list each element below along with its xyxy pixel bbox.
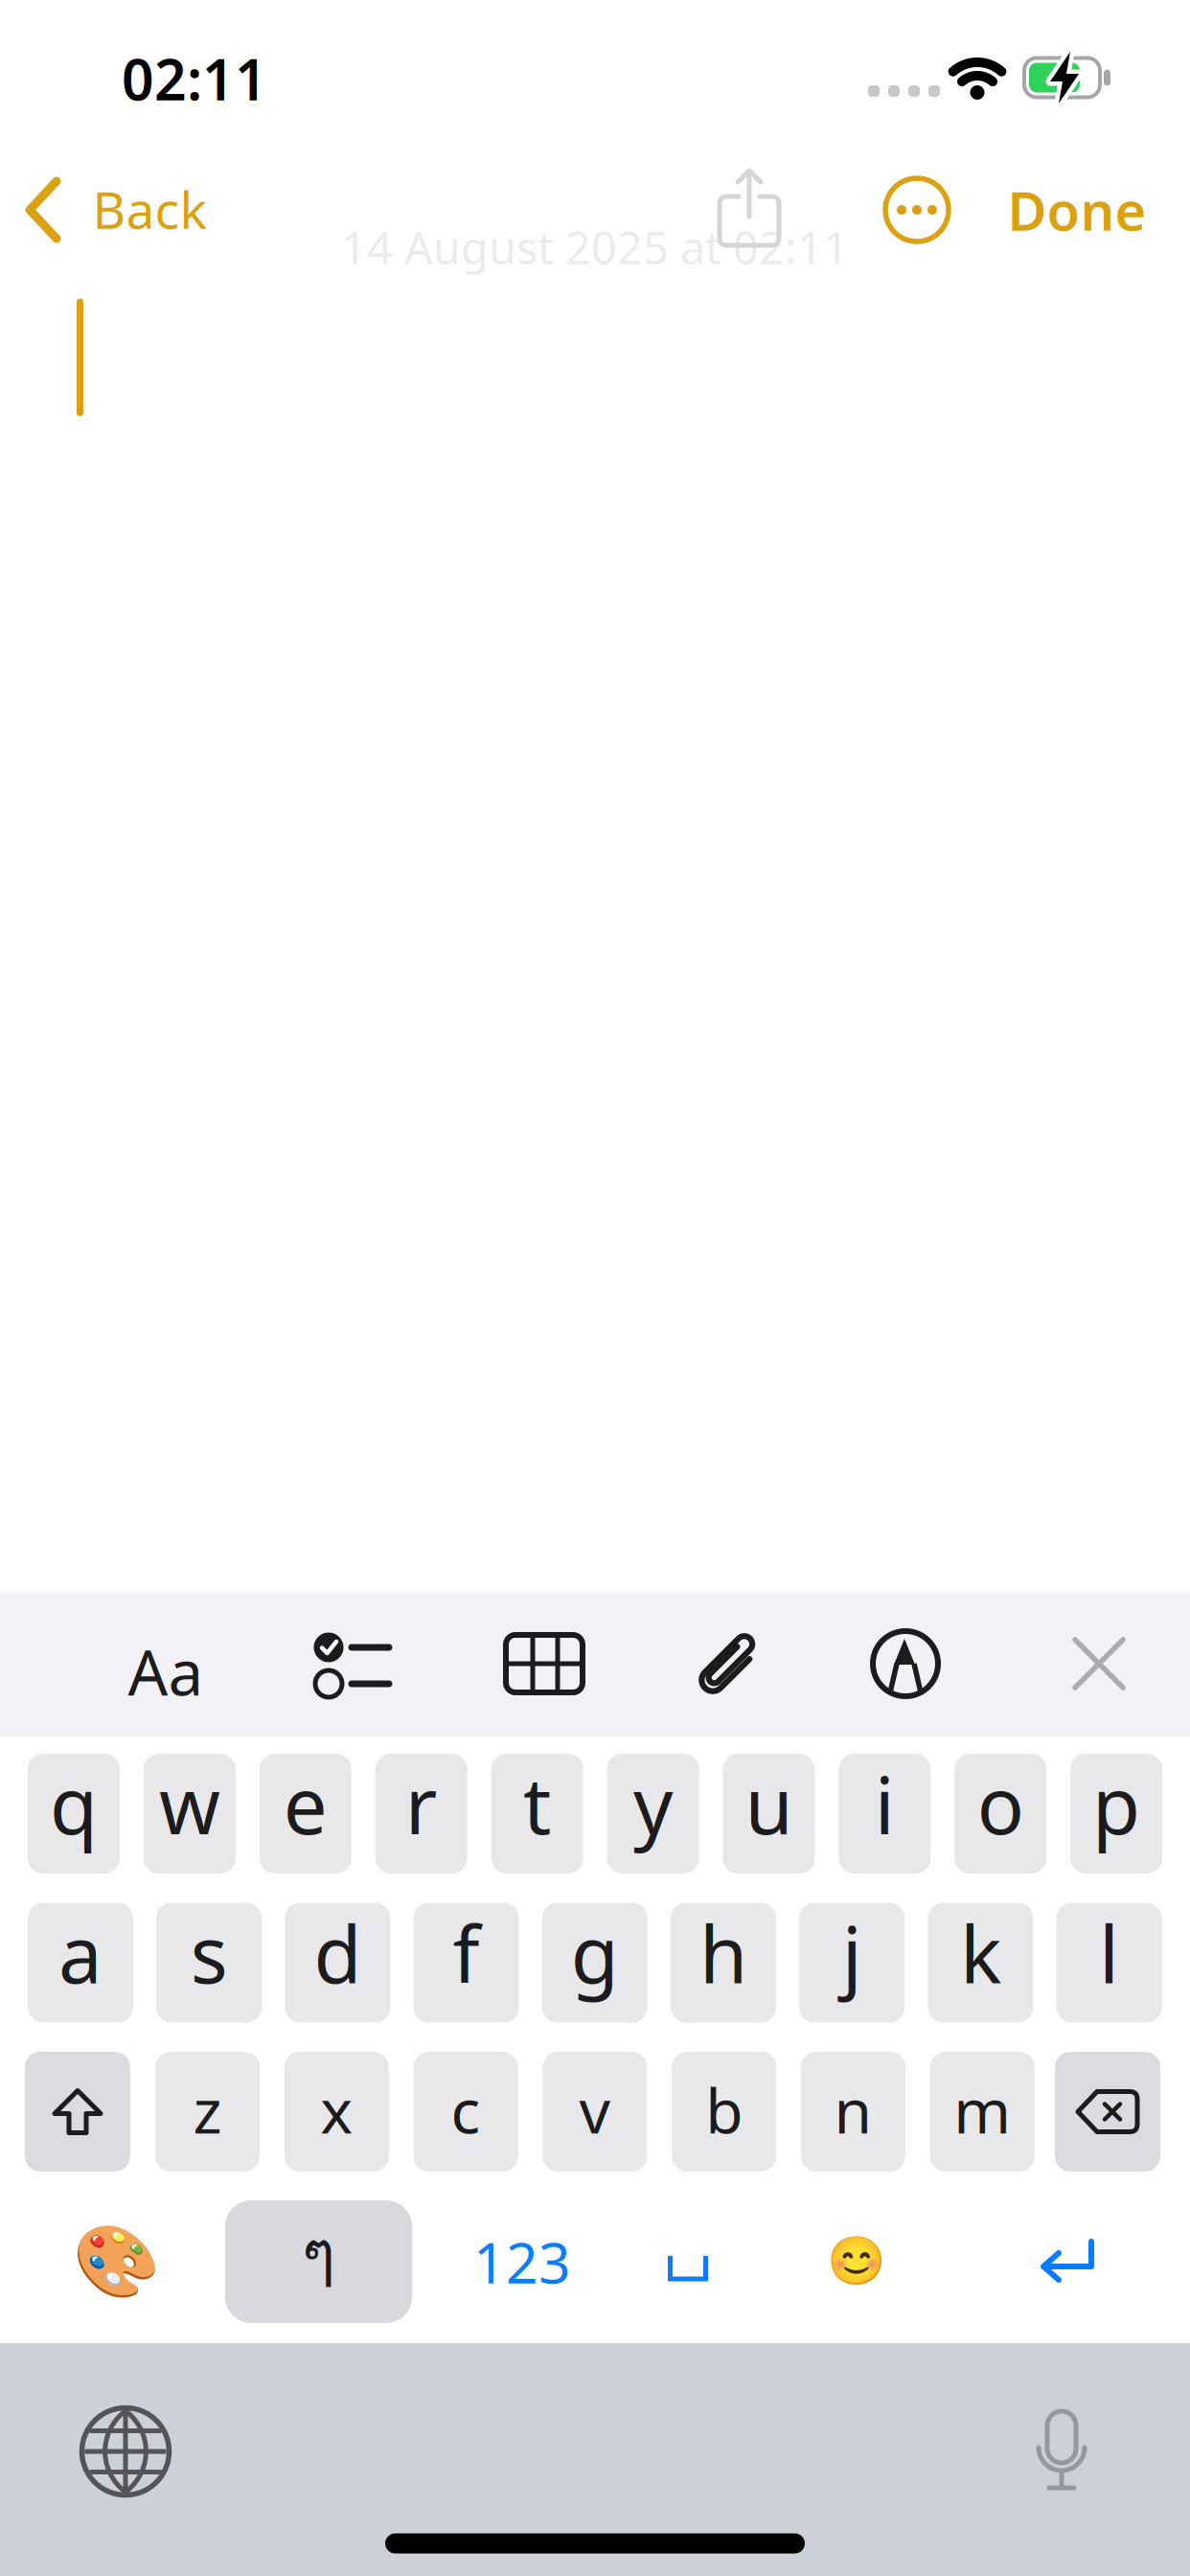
button[interactable]: Share — [718, 169, 781, 247]
staticText: 02:11 — [122, 41, 267, 116]
button[interactable]: Done — [967, 177, 1187, 242]
staticText: Back — [92, 175, 206, 243]
button[interactable]: o — [954, 1754, 1046, 1874]
button[interactable]: Delete — [1055, 2052, 1160, 2172]
staticText: Done — [1007, 174, 1146, 246]
staticText: j — [842, 1901, 862, 2005]
staticText: i — [875, 1752, 895, 1856]
staticText: v — [579, 2069, 611, 2150]
button[interactable]: Markup palette — [63, 2209, 169, 2314]
button[interactable]: Attach — [697, 1629, 760, 1700]
button[interactable]: p — [1070, 1754, 1162, 1874]
staticText: w — [159, 1752, 220, 1856]
button[interactable]: y — [607, 1754, 699, 1874]
button[interactable]: e — [259, 1754, 351, 1874]
button[interactable]: n — [801, 2052, 905, 2172]
button[interactable]: t — [491, 1754, 583, 1874]
staticText: t — [523, 1752, 551, 1856]
staticText: d — [314, 1901, 362, 2005]
button[interactable]: Next keyboard — [80, 2406, 171, 2496]
button[interactable]: c — [414, 2052, 518, 2172]
staticText: 14 August 2025 at 02:11 — [341, 218, 849, 277]
staticText: k — [960, 1901, 1001, 2005]
staticText: z — [193, 2069, 222, 2150]
button[interactable]: Return — [1040, 2238, 1095, 2286]
button[interactable]: z — [155, 2052, 260, 2172]
button[interactable]: u — [723, 1754, 815, 1874]
button[interactable]: Table — [504, 1633, 584, 1694]
button[interactable]: Shift — [25, 2052, 130, 2172]
staticText: 😊 — [826, 2234, 885, 2288]
staticText: y — [633, 1752, 673, 1856]
button[interactable]: Numbers — [450, 2209, 594, 2314]
button[interactable]: k — [928, 1903, 1033, 2023]
button[interactable]: i — [839, 1754, 931, 1874]
staticText: 🎨 — [72, 2222, 160, 2302]
button[interactable]: h — [671, 1903, 776, 2023]
button[interactable]: q — [28, 1754, 120, 1874]
staticText: l — [1099, 1901, 1119, 2005]
staticText: 123 — [473, 2224, 571, 2299]
staticText: ๆ — [301, 2203, 336, 2302]
staticText: o — [977, 1752, 1024, 1856]
button[interactable]: Dictation — [1035, 2409, 1088, 2495]
button[interactable]: s — [156, 1903, 262, 2023]
staticText: u — [745, 1752, 793, 1856]
button[interactable]: f — [414, 1903, 519, 2023]
staticText: m — [954, 2069, 1011, 2150]
button[interactable]: Back — [17, 177, 266, 242]
staticText: s — [190, 1901, 228, 2005]
staticText: c — [451, 2069, 481, 2150]
button[interactable]: More — [883, 176, 950, 243]
button[interactable]: b — [672, 2052, 776, 2172]
button[interactable]: Emoji — [808, 2213, 904, 2309]
button[interactable]: Dismiss keyboard — [1073, 1638, 1125, 1690]
staticText: n — [834, 2069, 872, 2150]
staticText: g — [571, 1901, 619, 2005]
button[interactable]: Space — [668, 2256, 708, 2281]
staticText: r — [405, 1752, 438, 1856]
button[interactable]: Format — [113, 1623, 218, 1719]
button[interactable]: x — [284, 2052, 389, 2172]
staticText: q — [50, 1752, 98, 1856]
button[interactable]: d — [285, 1903, 390, 2023]
staticText: a — [58, 1901, 103, 2005]
staticText: Aa — [128, 1630, 204, 1713]
button[interactable]: v — [543, 2052, 647, 2172]
staticText: x — [320, 2069, 353, 2150]
staticText: e — [283, 1752, 327, 1856]
button[interactable]: l — [1056, 1903, 1162, 2023]
button[interactable]: a — [28, 1903, 133, 2023]
button[interactable]: Checklist — [313, 1631, 394, 1698]
staticText: p — [1092, 1752, 1140, 1856]
button[interactable]: r — [375, 1754, 467, 1874]
button[interactable]: j — [799, 1903, 905, 2023]
button[interactable]: Thai repeat key — [225, 2200, 412, 2323]
button[interactable]: g — [542, 1903, 648, 2023]
staticText: f — [453, 1901, 480, 2005]
button[interactable]: Markup — [872, 1630, 939, 1697]
staticText: b — [705, 2069, 743, 2150]
staticText: h — [699, 1901, 747, 2005]
button[interactable]: m — [930, 2052, 1035, 2172]
button[interactable]: w — [144, 1754, 236, 1874]
